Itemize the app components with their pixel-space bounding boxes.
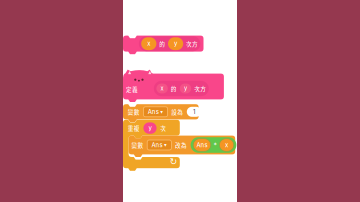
staticText: 次方 bbox=[194, 84, 206, 92]
staticText: 次 bbox=[160, 124, 166, 132]
staticText: 重複 bbox=[128, 124, 140, 132]
staticText: y bbox=[184, 85, 187, 92]
staticText: x bbox=[147, 40, 150, 47]
staticText: x bbox=[161, 85, 164, 92]
staticText: 設為 bbox=[171, 108, 183, 116]
staticText: 的 bbox=[159, 40, 165, 48]
staticText: Ans bbox=[196, 141, 207, 149]
staticText: 改為 bbox=[175, 141, 187, 149]
staticText: Ans bbox=[148, 108, 159, 115]
staticText: ▾ bbox=[164, 142, 167, 148]
staticText: 1 bbox=[193, 108, 195, 115]
staticText: * bbox=[214, 141, 217, 149]
staticText: ▾ bbox=[160, 109, 163, 115]
staticText: 次方 bbox=[186, 40, 198, 48]
staticText: ↻ bbox=[169, 156, 177, 167]
staticText: x bbox=[225, 141, 228, 149]
staticText: 的 bbox=[171, 84, 177, 92]
staticText: y bbox=[174, 40, 177, 47]
staticText: Ans bbox=[152, 141, 163, 149]
staticText: 變數 bbox=[128, 108, 140, 116]
staticText: 定義 bbox=[126, 85, 138, 93]
staticText: y bbox=[148, 125, 151, 132]
staticText: 變數 bbox=[132, 141, 144, 149]
